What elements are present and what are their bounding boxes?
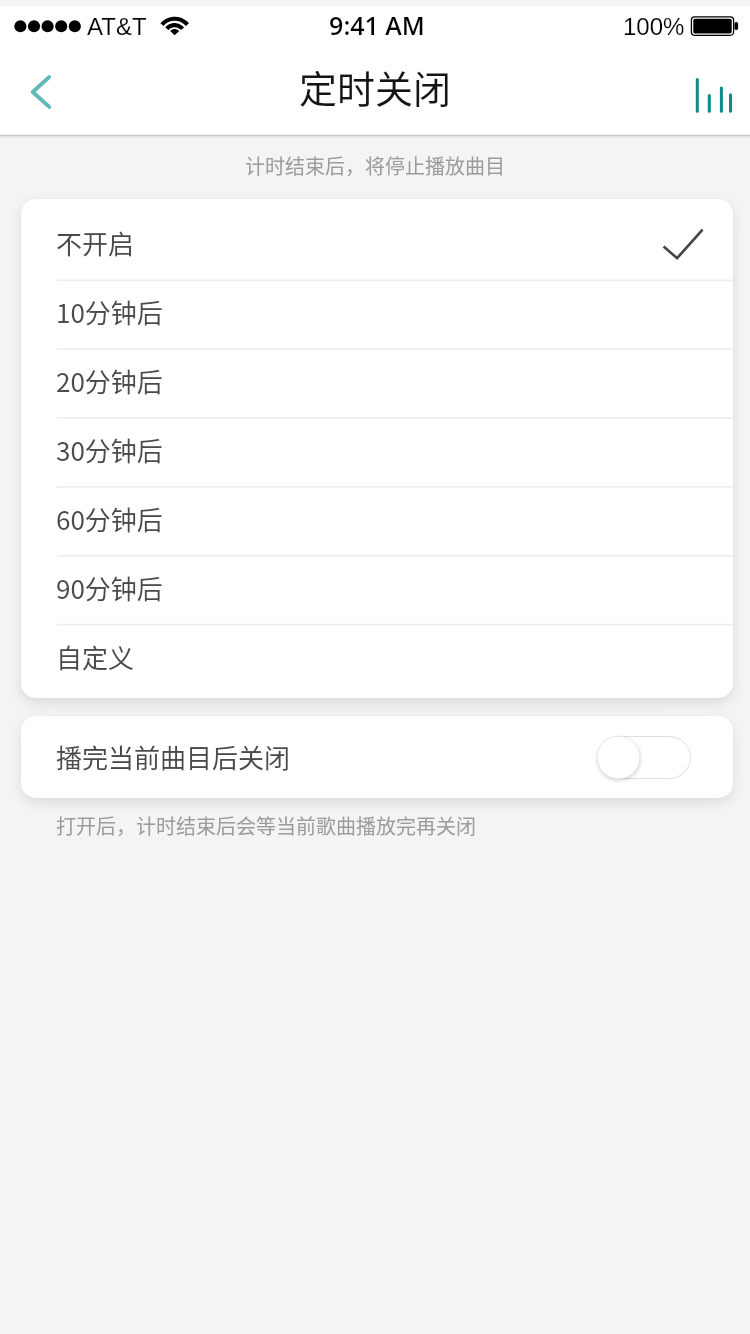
- button[interactable]: Now playing: [684, 66, 744, 122]
- staticText: 播完当前曲目后关闭: [56, 738, 291, 776]
- button[interactable]: 20分钟后: [21, 346, 733, 415]
- staticText: 不开启: [56, 224, 135, 262]
- staticText: 自定义: [56, 638, 135, 676]
- button[interactable]: 10分钟后: [21, 277, 733, 346]
- staticText: 计时结束后，将停止播放曲目: [0, 151, 750, 180]
- other: Stop after current track, off: [597, 736, 691, 779]
- staticText: 30分钟后: [56, 431, 163, 469]
- button[interactable]: 90分钟后: [21, 553, 733, 622]
- staticText: 60分钟后: [56, 500, 163, 538]
- staticText: AT&T: [87, 13, 147, 40]
- button[interactable]: 不开启: [21, 208, 733, 277]
- staticText: 打开后，计时结束后会等当前歌曲播放完再关闭: [56, 811, 476, 840]
- staticText: 90分钟后: [56, 569, 163, 607]
- button[interactable]: Back: [8, 62, 68, 122]
- staticText: 100%: [623, 13, 685, 40]
- staticText: 20分钟后: [56, 362, 163, 400]
- button[interactable]: 30分钟后: [21, 415, 733, 484]
- staticText: 10分钟后: [56, 293, 163, 331]
- staticText: 定时关闭: [0, 59, 750, 114]
- button[interactable]: 自定义: [21, 622, 733, 691]
- button[interactable]: 60分钟后: [21, 484, 733, 553]
- staticText: 9:41 AM: [2, 8, 750, 42]
- button[interactable]: 播完当前曲目后关闭: [21, 716, 733, 798]
